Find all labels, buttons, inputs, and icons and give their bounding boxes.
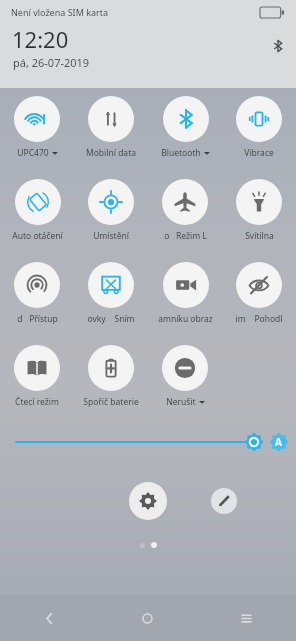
staticText: Nerušit [166, 396, 196, 408]
staticText: Bluetooth [161, 147, 201, 159]
button[interactable]: UPC470 [14, 96, 60, 159]
button[interactable]: Jas [0, 430, 296, 454]
button[interactable]: Mobilní data [86, 96, 136, 159]
staticText: pá, 26-07-2019 [13, 55, 90, 70]
button[interactable]: Umístění [88, 179, 134, 242]
staticText: Auto otáčení [12, 230, 63, 242]
button[interactable]: d Přístup [14, 262, 60, 325]
staticText: ovky Sním [87, 313, 135, 325]
other: Bluetooth [271, 39, 285, 53]
button[interactable]: Domů [98, 595, 197, 641]
button[interactable]: o Režim L [162, 179, 208, 242]
staticText: UPC470 [17, 147, 49, 159]
button[interactable]: Čtecí režim [14, 345, 60, 408]
button[interactable]: Upravit [211, 488, 237, 514]
button[interactable]: Spořič baterie [83, 345, 139, 408]
button[interactable]: Svítilna [236, 179, 282, 242]
staticText: Mobilní data [86, 147, 136, 159]
button[interactable]: Nastavení [129, 482, 167, 520]
staticText: Vibrace [244, 147, 274, 159]
staticText: Svítilna [245, 230, 274, 242]
button[interactable]: Nerušit [162, 345, 208, 408]
button[interactable]: Auto otáčení [12, 179, 63, 242]
staticText: Není vložena SIM karta [11, 6, 109, 18]
staticText: amníku obraz [158, 313, 213, 325]
staticText: o Režim L [164, 230, 207, 242]
button[interactable]: Vibrace [236, 96, 282, 159]
button[interactable]: Zpět [0, 595, 98, 641]
staticText: im Pohodl [235, 313, 283, 325]
button[interactable]: Poslední aplikace [197, 595, 296, 641]
staticText: Čtecí režim [15, 396, 59, 408]
staticText: Umístění [93, 230, 129, 242]
staticText: Spořič baterie [83, 396, 139, 408]
button[interactable]: Bluetooth [161, 96, 210, 159]
staticText: 12:20 [12, 24, 69, 54]
button[interactable]: ovky Sním [87, 262, 135, 325]
staticText: A [275, 435, 282, 449]
button[interactable]: im Pohodl [235, 262, 283, 325]
button[interactable]: amníku obraz [158, 262, 213, 325]
staticText: d Přístup [17, 313, 58, 325]
